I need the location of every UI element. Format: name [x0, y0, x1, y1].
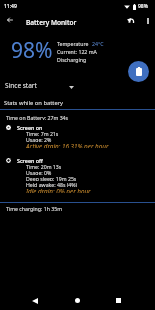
staticText: Since start	[5, 81, 37, 90]
button[interactable]: Recent apps	[108, 290, 129, 310]
staticText: Time on Battery: 27m 34s	[6, 114, 69, 120]
staticText: Idle drain: 0% per hour	[26, 187, 91, 193]
staticText: 24°C	[92, 40, 104, 47]
staticText: Active drain: 16.31% per hour	[26, 142, 109, 148]
staticText: Stats while on battery	[4, 99, 64, 107]
staticText: 98%	[11, 36, 53, 65]
staticText: Temperature	[57, 40, 89, 47]
button[interactable]: Back	[24, 290, 45, 310]
staticText: Time: 20m 13s	[26, 163, 62, 169]
staticText: Held awake: 48s (4%)	[26, 181, 78, 187]
staticText: Usage: 0%	[26, 169, 52, 175]
button[interactable]: Stats while on battery	[0, 99, 155, 110]
staticText: 11:49	[4, 3, 17, 10]
button[interactable]: Home	[67, 290, 88, 310]
staticText: Discharging	[57, 56, 87, 63]
button[interactable]: Navigate up	[1, 11, 19, 29]
staticText: Battery Monitor	[26, 18, 77, 27]
staticText: Usage: 2%	[26, 136, 52, 142]
button[interactable]: Since start	[5, 78, 74, 92]
staticText: Time: 7m 21s	[26, 130, 59, 136]
staticText: Current: 122 mA	[57, 48, 97, 55]
button[interactable]: More options	[140, 13, 155, 28]
staticText: Time charging: 1h 35m	[6, 205, 63, 212]
button[interactable]: Battery details	[128, 61, 149, 82]
staticText: Deep sleep: 19m 25s	[26, 175, 77, 181]
staticText: 98%	[138, 3, 148, 10]
staticText: Screen off	[17, 157, 43, 163]
staticText: Screen on	[17, 124, 43, 130]
button[interactable]: Reset	[121, 11, 139, 29]
